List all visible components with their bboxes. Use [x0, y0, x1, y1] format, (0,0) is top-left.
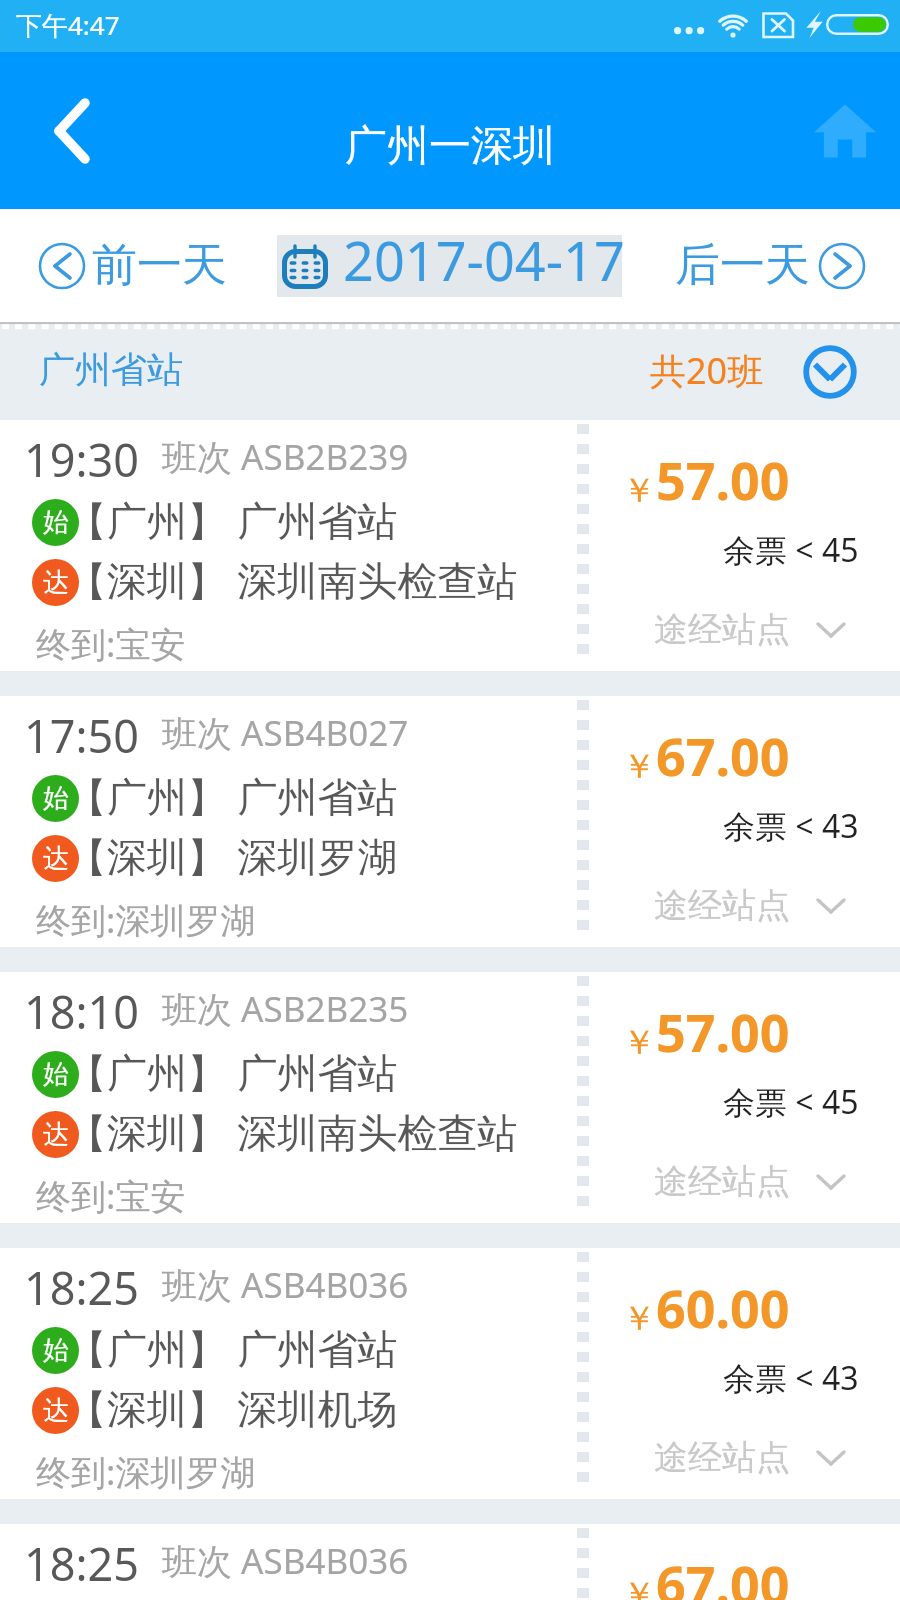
staticText: 18:10	[24, 981, 140, 1042]
staticText: 下午4:47	[16, 7, 120, 43]
button[interactable]: 后一天	[675, 237, 868, 294]
staticText: 班次 ASB2B239	[162, 433, 409, 481]
staticText: 17:50	[24, 705, 140, 766]
button[interactable]: 前一天	[36, 237, 227, 294]
staticText: 达	[43, 1118, 69, 1151]
button[interactable]: 18:10	[0, 972, 900, 1223]
staticText: 【广州】 广州省站	[67, 1320, 398, 1375]
staticText: 达	[43, 842, 69, 875]
staticText: 广州省站	[39, 347, 183, 392]
staticText: 途经站点	[654, 608, 790, 651]
staticText: 达	[43, 566, 69, 599]
staticText: 【深圳】 深圳机场	[67, 1380, 398, 1435]
staticText: 19:30	[24, 429, 140, 490]
staticText: 终到:宝安	[36, 1172, 186, 1220]
staticText: 67.00	[656, 1548, 790, 1600]
staticText: ￥	[622, 1573, 656, 1600]
staticText: ￥	[622, 469, 656, 512]
staticText: 途经站点	[654, 1160, 790, 1203]
staticText: 57.00	[656, 444, 790, 515]
staticText: ￥	[622, 1021, 656, 1064]
staticText: 始	[43, 1058, 69, 1091]
staticText: ￥	[622, 745, 656, 788]
button[interactable]: 广州省站	[0, 331, 900, 420]
button[interactable]: 途经站点	[654, 884, 846, 927]
staticText: 67.00	[656, 720, 790, 791]
staticText: 余票 < 43	[723, 1356, 859, 1400]
staticText: 共20班	[650, 346, 764, 395]
staticText: 班次 ASB4B036	[162, 1261, 409, 1309]
staticText: 【深圳】 深圳南头检查站	[67, 1104, 518, 1159]
button[interactable]: 19:30	[0, 420, 900, 671]
button[interactable]: 17:50	[0, 696, 900, 947]
staticText: 余票 < 45	[723, 528, 859, 572]
staticText: 前一天	[92, 237, 227, 294]
staticText: 【深圳】 深圳罗湖	[67, 828, 398, 883]
button[interactable]: 18:25	[0, 1248, 900, 1499]
staticText: 班次 ASB4B036	[162, 1537, 409, 1585]
staticText: 终到:深圳罗湖	[36, 1448, 256, 1496]
staticText: 【广州】 广州省站	[67, 768, 398, 823]
staticText: 班次 ASB4B027	[162, 709, 409, 757]
button[interactable]: 18:25	[0, 1524, 900, 1600]
staticText: 终到:宝安	[36, 620, 186, 668]
button[interactable]: 途经站点	[654, 608, 846, 651]
staticText: 【深圳】 深圳南头检查站	[67, 552, 518, 607]
staticText: 【广州】 广州省站	[67, 1044, 398, 1099]
staticText: 始	[43, 1334, 69, 1367]
staticText: 达	[43, 1394, 69, 1427]
staticText: 60.00	[656, 1272, 790, 1343]
staticText: 57.00	[656, 996, 790, 1067]
button[interactable]: Back	[0, 52, 130, 209]
staticText: 班次 ASB2B235	[162, 985, 409, 1033]
staticText: 始	[43, 506, 69, 539]
staticText: ￥	[622, 1297, 656, 1340]
staticText: 途经站点	[654, 884, 790, 927]
staticText: 余票 < 45	[723, 1080, 859, 1124]
button[interactable]: 途经站点	[654, 1160, 846, 1203]
staticText: 终到:深圳罗湖	[36, 896, 256, 944]
staticText: 广州一深圳	[345, 120, 555, 173]
staticText: 始	[43, 782, 69, 815]
staticText: 2017-04-17	[343, 223, 625, 285]
staticText: 后一天	[675, 237, 810, 294]
button[interactable]: 2017-04-17	[277, 235, 622, 297]
staticText: 18:25	[24, 1257, 140, 1318]
staticText: 余票 < 43	[723, 804, 859, 848]
staticText: 途经站点	[654, 1436, 790, 1479]
staticText: 18:25	[24, 1533, 140, 1594]
staticText: 【广州】 广州省站	[67, 492, 398, 547]
button[interactable]: Home	[790, 52, 900, 209]
button[interactable]: 途经站点	[654, 1436, 846, 1479]
